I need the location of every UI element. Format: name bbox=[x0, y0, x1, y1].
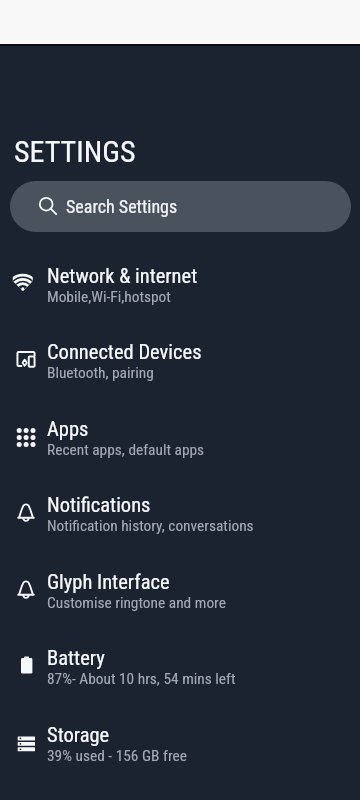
button[interactable]: Network and internet bbox=[0, 246, 360, 323]
staticText: SETTINGS bbox=[14, 134, 136, 169]
other: Notifications bbox=[14, 500, 38, 524]
staticText: Connected Devices bbox=[47, 340, 202, 364]
staticText: Glyph Interface bbox=[47, 570, 170, 594]
button[interactable]: Glyph interface bbox=[0, 552, 360, 629]
staticText: 39% used - 156 GB free bbox=[47, 747, 187, 765]
staticText: Mobile,Wi-Fi,hotspot bbox=[47, 288, 171, 306]
other: Battery bbox=[14, 653, 38, 677]
button[interactable]: Notifications bbox=[0, 476, 360, 552]
staticText: Search Settings bbox=[66, 196, 178, 217]
staticText: Storage bbox=[47, 723, 110, 747]
other: Connected devices bbox=[14, 347, 38, 371]
staticText: Apps bbox=[47, 417, 89, 441]
staticText: Battery bbox=[47, 646, 105, 670]
button[interactable]: Connected devices bbox=[0, 323, 360, 399]
staticText: Network & internet bbox=[47, 264, 198, 288]
other: Network and internet bbox=[14, 271, 38, 295]
other: Storage bbox=[14, 730, 38, 754]
other: Glyph interface bbox=[14, 577, 38, 601]
staticText: Customise ringtone and more bbox=[47, 594, 226, 612]
button[interactable]: Storage bbox=[0, 705, 360, 782]
staticText: Notifications bbox=[47, 493, 151, 517]
staticText: 87%- About 10 hrs, 54 mins left bbox=[47, 670, 236, 688]
other: Apps bbox=[14, 424, 38, 448]
staticText: Notification history, conversations bbox=[47, 517, 254, 535]
staticText: Recent apps, default apps bbox=[47, 441, 205, 459]
staticText: Bluetooth, pairing bbox=[47, 364, 154, 382]
button[interactable]: Search Settings bbox=[10, 181, 351, 232]
button[interactable]: Apps bbox=[0, 399, 360, 476]
button[interactable]: Battery bbox=[0, 629, 360, 705]
